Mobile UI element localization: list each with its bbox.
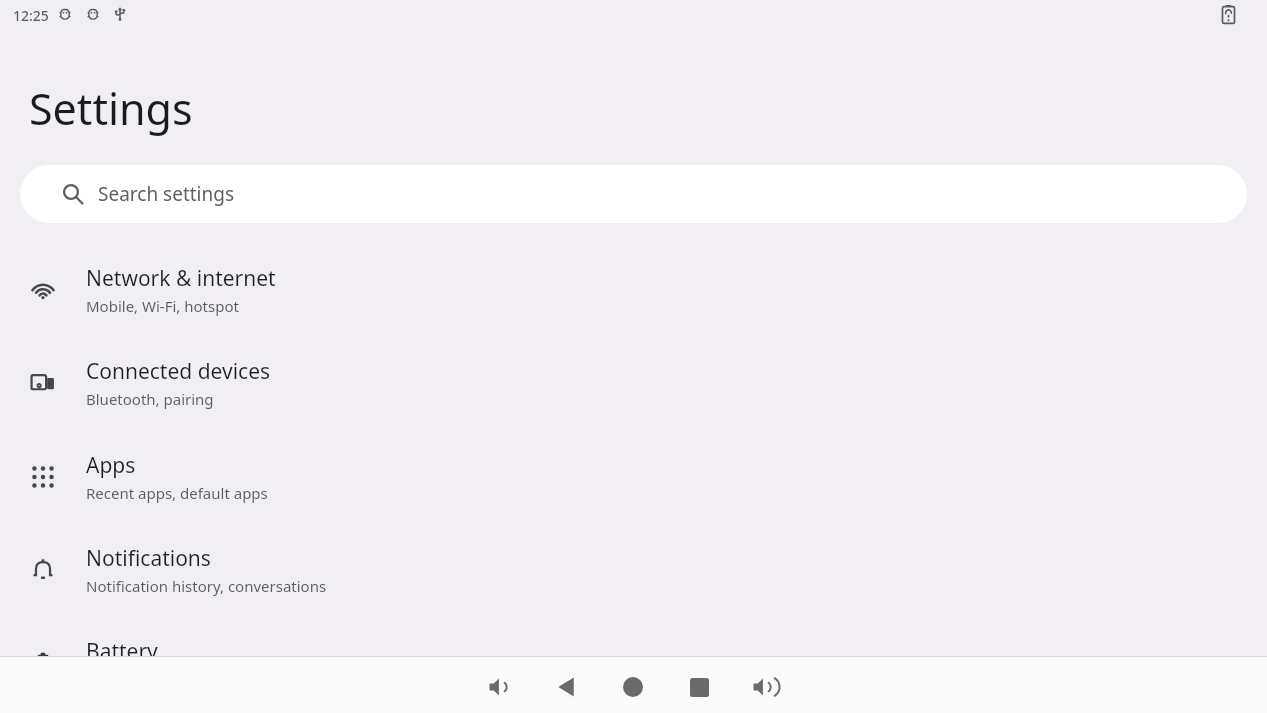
button[interactable]: Notifications [0, 535, 1267, 605]
staticText: Network & internet [86, 264, 276, 293]
staticText: Apps [86, 451, 136, 480]
button[interactable]: Apps [0, 442, 1267, 512]
button[interactable]: Volume down [483, 669, 519, 705]
staticText: Connected devices [86, 357, 271, 386]
staticText: Notifications [86, 544, 211, 573]
button[interactable]: Back [549, 669, 585, 705]
button[interactable]: Search settings [20, 165, 1247, 223]
staticText: Search settings [98, 181, 235, 207]
staticText: Bluetooth, pairing [86, 389, 214, 409]
staticText: Mobile, Wi-Fi, hotspot [86, 296, 239, 316]
staticText: Notification history, conversations [86, 576, 327, 596]
button[interactable]: Volume up [747, 669, 783, 705]
button[interactable]: Home [615, 669, 651, 705]
staticText: Battery [86, 637, 158, 666]
button[interactable]: Battery [0, 628, 1267, 698]
staticText: Settings [29, 79, 193, 138]
button[interactable]: Recent apps [681, 669, 717, 705]
button[interactable]: Connected devices [0, 348, 1267, 418]
button[interactable]: Network & internet [0, 255, 1267, 325]
staticText: 12:25 [13, 6, 49, 25]
staticText: Recent apps, default apps [86, 483, 268, 503]
